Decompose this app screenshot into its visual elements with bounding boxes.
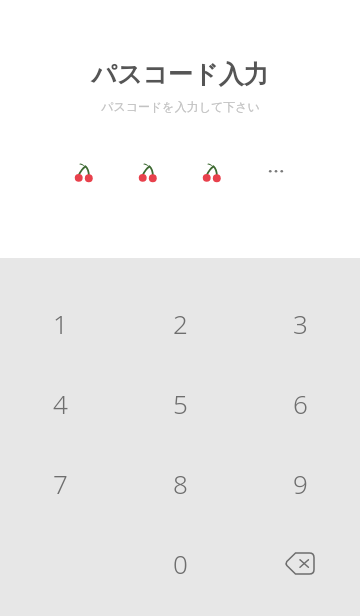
staticText: 4: [53, 386, 68, 421]
button[interactable]: 0: [120, 523, 240, 603]
staticText: パスコード入力: [91, 59, 269, 90]
button[interactable]: 4: [0, 363, 120, 443]
button[interactable]: 7: [0, 443, 120, 523]
staticText: 0: [173, 546, 188, 581]
button[interactable]: 5: [120, 363, 240, 443]
button[interactable]: 3: [240, 283, 360, 363]
button[interactable]: 1: [0, 283, 120, 363]
staticText: 2: [173, 306, 188, 341]
staticText: 6: [293, 386, 308, 421]
button[interactable]: 6: [240, 363, 360, 443]
staticText: 5: [173, 386, 188, 421]
staticText: 3: [293, 306, 308, 341]
staticText: 9: [293, 466, 308, 501]
button[interactable]: Backspace: [240, 523, 360, 603]
button[interactable]: 2: [120, 283, 240, 363]
staticText: パスコードを入力して下さい: [101, 99, 260, 114]
staticText: 8: [173, 466, 188, 501]
staticText: 7: [53, 466, 68, 501]
button[interactable]: 9: [240, 443, 360, 523]
button[interactable]: 8: [120, 443, 240, 523]
staticText: 1: [53, 306, 68, 341]
